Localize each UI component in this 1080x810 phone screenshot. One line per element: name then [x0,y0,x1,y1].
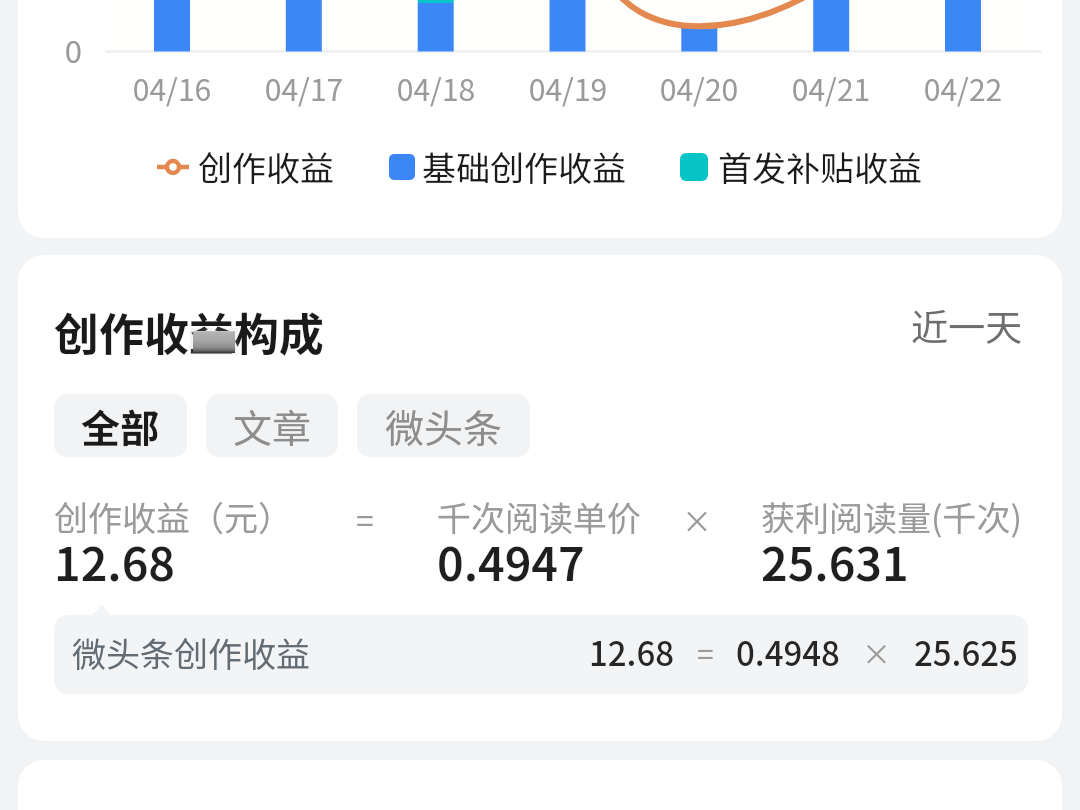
button[interactable]: 近一天 [893,288,1043,348]
button[interactable]: 创作收益 [157,142,334,191]
staticText: 全部 [81,398,160,454]
staticText: 基础创作收益 [422,142,626,191]
staticText: 04/20 [629,66,769,109]
staticText: 微头条 [385,398,503,454]
staticText: = [356,496,374,542]
staticText: 04/21 [761,66,901,109]
staticText: 04/16 [102,66,242,109]
staticText: 创作收益（元） [54,492,292,541]
staticText: 04/22 [893,66,1033,109]
staticText: 千次阅读单价 [437,492,641,541]
button[interactable]: 微头条 [357,394,530,457]
button[interactable]: 全部 [54,394,187,457]
staticText: 首发补贴收益 [718,142,922,191]
staticText: 12.68 [589,628,675,676]
staticText: 04/18 [366,66,506,109]
staticText: 04/17 [234,66,374,109]
staticText: × [682,498,712,541]
button[interactable]: 基础创作收益 [389,142,626,191]
staticText: 获利阅读量(千次) [761,492,1022,541]
staticText: 0.4947 [437,528,585,595]
staticText: 25.625 [914,628,1018,676]
staticText: 25.631 [761,528,909,595]
staticText: 微头条创作收益 [72,628,310,677]
staticText: 创作收益构成 [54,299,325,364]
staticText: 04/19 [498,66,638,109]
staticText: × [862,631,892,673]
staticText: 0 [20,27,82,72]
button[interactable]: 微头条创作收益 [54,615,1028,694]
staticText: 12.68 [54,528,176,595]
staticText: = [697,631,714,674]
button[interactable]: 首发补贴收益 [680,142,922,191]
staticText: 文章 [233,398,312,454]
staticText: 创作收益 [198,142,334,191]
staticText: 近一天 [911,298,1022,352]
button[interactable]: 文章 [206,394,338,457]
staticText: 0.4948 [736,628,840,676]
